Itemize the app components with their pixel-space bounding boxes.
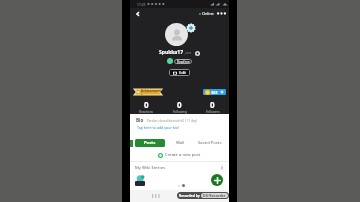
staticText: Achievements xyxy=(141,89,162,95)
button[interactable]: Read me xyxy=(174,59,192,64)
button[interactable]: Create xyxy=(211,174,223,186)
staticText: 0 xyxy=(210,99,215,110)
staticText: DU Recorder xyxy=(203,193,226,198)
staticText: Following xyxy=(173,110,187,114)
button[interactable]: Online xyxy=(198,10,215,17)
staticText: Online xyxy=(202,11,214,16)
staticText: Saved Posts xyxy=(198,140,222,146)
button[interactable]: Settings xyxy=(194,50,200,56)
staticText: Spukka17 xyxy=(159,49,184,56)
button[interactable]: Bio xyxy=(136,117,229,123)
button[interactable]: Friend xyxy=(135,175,145,186)
button[interactable]: Create a new post xyxy=(130,152,229,158)
staticText: _xxxx xyxy=(184,51,192,55)
staticText: Posts xyxy=(144,140,156,146)
staticText: Bio xyxy=(136,117,144,123)
staticText: 0 xyxy=(177,99,182,110)
staticText: Reactions xyxy=(139,110,154,114)
button[interactable]: 0 xyxy=(130,99,163,114)
button[interactable]: 0 xyxy=(196,99,229,114)
button[interactable]: Back xyxy=(133,9,142,18)
button[interactable]: More options xyxy=(216,9,226,18)
staticText: 0 xyxy=(144,99,149,110)
staticText: My Wiki Entries xyxy=(135,165,166,171)
button[interactable]: Saved Posts xyxy=(195,139,225,147)
button[interactable]: Profile photo xyxy=(165,23,188,46)
staticText: Followers xyxy=(206,110,220,114)
button[interactable]: 0 xyxy=(163,99,196,114)
staticText: Pardon closed biernah till 1 (1 day) xyxy=(147,119,198,123)
button[interactable]: 361 xyxy=(203,89,226,95)
button[interactable]: Posts xyxy=(135,139,165,147)
staticText: 361 xyxy=(211,90,218,95)
button[interactable]: Add photo xyxy=(186,23,196,33)
staticText: Recorded by xyxy=(179,193,200,198)
button[interactable]: Edit xyxy=(169,69,190,76)
button[interactable]: Tap here to add your bio! xyxy=(137,125,180,130)
button[interactable]: Level xyxy=(167,58,173,64)
staticText: Create a new post xyxy=(165,152,201,158)
staticText: Wall xyxy=(176,140,185,146)
button[interactable]: Achievements xyxy=(134,89,162,95)
button[interactable]: Wall xyxy=(170,139,191,147)
button[interactable]: My Wiki Entries xyxy=(130,162,229,173)
staticText: 11:21 xyxy=(137,2,146,7)
staticText: Edit xyxy=(179,70,186,75)
staticText: Read me xyxy=(177,60,190,64)
